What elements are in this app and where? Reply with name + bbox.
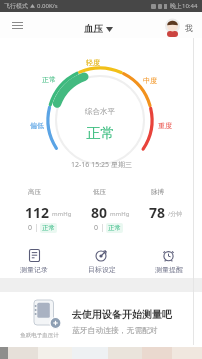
button[interactable]: 测量提醒 bbox=[135, 236, 202, 278]
button[interactable]: 鱼跃电子血压计 bbox=[0, 292, 202, 347]
button[interactable]: 目标设定 bbox=[68, 236, 135, 278]
staticText: 80 bbox=[91, 203, 108, 222]
staticText: 飞行模式 bbox=[4, 2, 28, 10]
staticText: 测量提醒 bbox=[155, 265, 183, 274]
button[interactable]: 我 bbox=[165, 18, 193, 37]
staticText: 12-16 15:25 星期三 bbox=[71, 160, 132, 170]
staticText: mmHg bbox=[110, 210, 130, 218]
staticText: 112 bbox=[25, 203, 50, 222]
staticText: mmHg bbox=[52, 210, 72, 218]
staticText: 综合水平 bbox=[85, 107, 115, 116]
staticText: 正常 bbox=[42, 224, 55, 232]
staticText: 正常 bbox=[108, 224, 121, 232]
staticText: 血压 bbox=[84, 23, 103, 35]
staticText: 目标设定 bbox=[88, 265, 116, 274]
staticText: 偏低 bbox=[30, 121, 44, 130]
staticText: 低压 bbox=[93, 188, 106, 196]
staticText: 测量记录 bbox=[20, 265, 48, 274]
staticText: 我 bbox=[185, 23, 193, 33]
staticText: 轻度 bbox=[86, 58, 100, 67]
staticText: 脉搏 bbox=[151, 188, 164, 196]
button[interactable] bbox=[8, 16, 26, 34]
staticText: 高压 bbox=[28, 188, 41, 196]
staticText: 0.00K/s bbox=[37, 2, 58, 10]
button[interactable]: 测量记录 bbox=[0, 236, 68, 278]
button[interactable]: 血压 bbox=[84, 23, 113, 35]
staticText: 78 bbox=[149, 203, 166, 222]
staticText: 鱼跃电子血压计 bbox=[20, 332, 59, 339]
staticText: /分钟 bbox=[168, 210, 183, 218]
staticText: 0 bbox=[28, 223, 33, 233]
staticText: 0 bbox=[94, 223, 99, 233]
staticText: 中度 bbox=[143, 76, 157, 85]
staticText: 去使用设备开始测量吧 bbox=[72, 308, 172, 321]
staticText: 正常 bbox=[86, 124, 115, 142]
staticText: 重度 bbox=[158, 121, 172, 130]
staticText: 正常 bbox=[42, 75, 56, 84]
staticText: 蓝牙自动连接，无需配对 bbox=[72, 325, 158, 335]
staticText: 晚上10:44 bbox=[170, 2, 198, 10]
